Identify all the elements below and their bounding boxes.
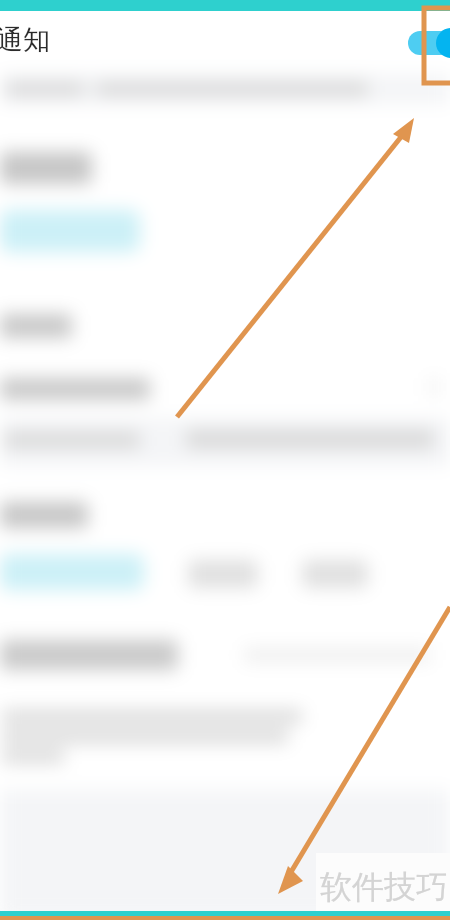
- button[interactable]: Toggle notifications: [408, 26, 450, 60]
- staticText: 通知: [0, 23, 50, 57]
- staticText: 软件技巧: [320, 867, 448, 907]
